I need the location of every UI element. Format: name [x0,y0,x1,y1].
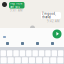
button[interactable]: Send [52,29,61,38]
staticText: 9:41 AM [10,9,22,12]
staticText: I'm good, thanks! [42,12,56,19]
button[interactable]: Attachment [30,40,45,47]
button[interactable]: Attachment [15,40,30,47]
button[interactable]: Attachment [0,40,15,47]
button[interactable]: Attachment [45,40,60,47]
staticText: 9:42 AM [47,19,59,23]
staticText: Hey! How are you [10,2,22,9]
